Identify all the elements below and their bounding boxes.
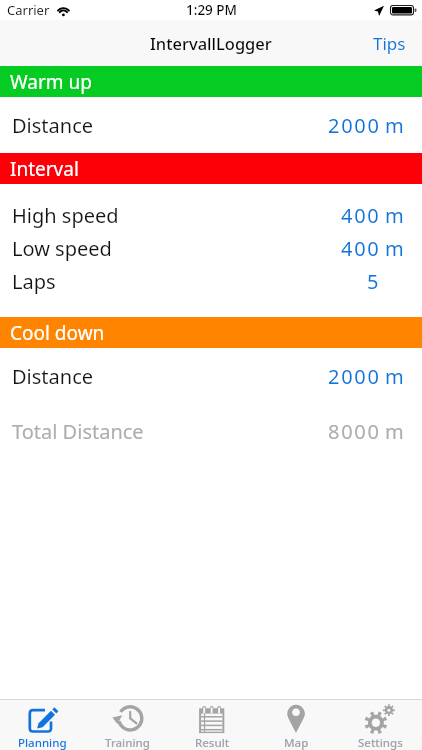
staticText: Low speed (12, 235, 112, 262)
staticText: m (385, 363, 404, 390)
staticText: Interval (10, 156, 79, 182)
staticText: 5 (367, 268, 381, 295)
staticText: Total Distance (12, 418, 144, 445)
staticText: Map (284, 735, 309, 750)
staticText: Tips (373, 32, 406, 55)
staticText: Training (105, 735, 150, 750)
staticText: 400 (341, 202, 381, 229)
staticText: m (385, 202, 404, 229)
staticText: m (385, 418, 404, 445)
staticText: Warm up (10, 69, 92, 95)
button[interactable]: Training (85, 700, 170, 750)
button[interactable]: Total Distance (0, 415, 422, 448)
staticText: Distance (12, 112, 94, 139)
button[interactable]: Distance (0, 97, 422, 153)
staticText: m (385, 235, 404, 262)
staticText: m (385, 112, 404, 139)
staticText: Laps (12, 268, 56, 295)
button[interactable]: High speed (0, 199, 422, 232)
staticText: Distance (12, 363, 94, 390)
staticText: 1:29 PM (186, 1, 237, 19)
staticText: Planning (18, 735, 67, 750)
button[interactable]: Result (170, 700, 254, 750)
button[interactable]: Laps (0, 265, 422, 298)
staticText: Carrier (7, 1, 50, 19)
button[interactable]: Tips (357, 22, 422, 65)
staticText: 400 (341, 235, 381, 262)
staticText: 2000 (328, 112, 381, 139)
staticText: High speed (12, 202, 119, 229)
staticText: Result (195, 735, 230, 750)
staticText: Settings (358, 735, 403, 750)
button[interactable]: Low speed (0, 232, 422, 265)
staticText: 8000 (328, 418, 381, 445)
button[interactable]: Planning (0, 700, 85, 750)
button[interactable]: Distance (0, 360, 422, 393)
button[interactable]: Settings (338, 700, 422, 750)
staticText: IntervallLogger (150, 32, 272, 54)
button[interactable]: Map (254, 700, 338, 750)
staticText: 2000 (328, 363, 381, 390)
staticText: Cool down (10, 320, 105, 346)
